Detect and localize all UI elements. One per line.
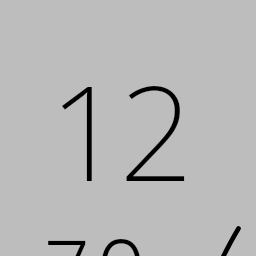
staticText: 1: [49, 41, 124, 219]
staticText: 2: [119, 41, 194, 219]
staticText: 7: [44, 212, 90, 256]
staticText: 0: [96, 209, 147, 256]
